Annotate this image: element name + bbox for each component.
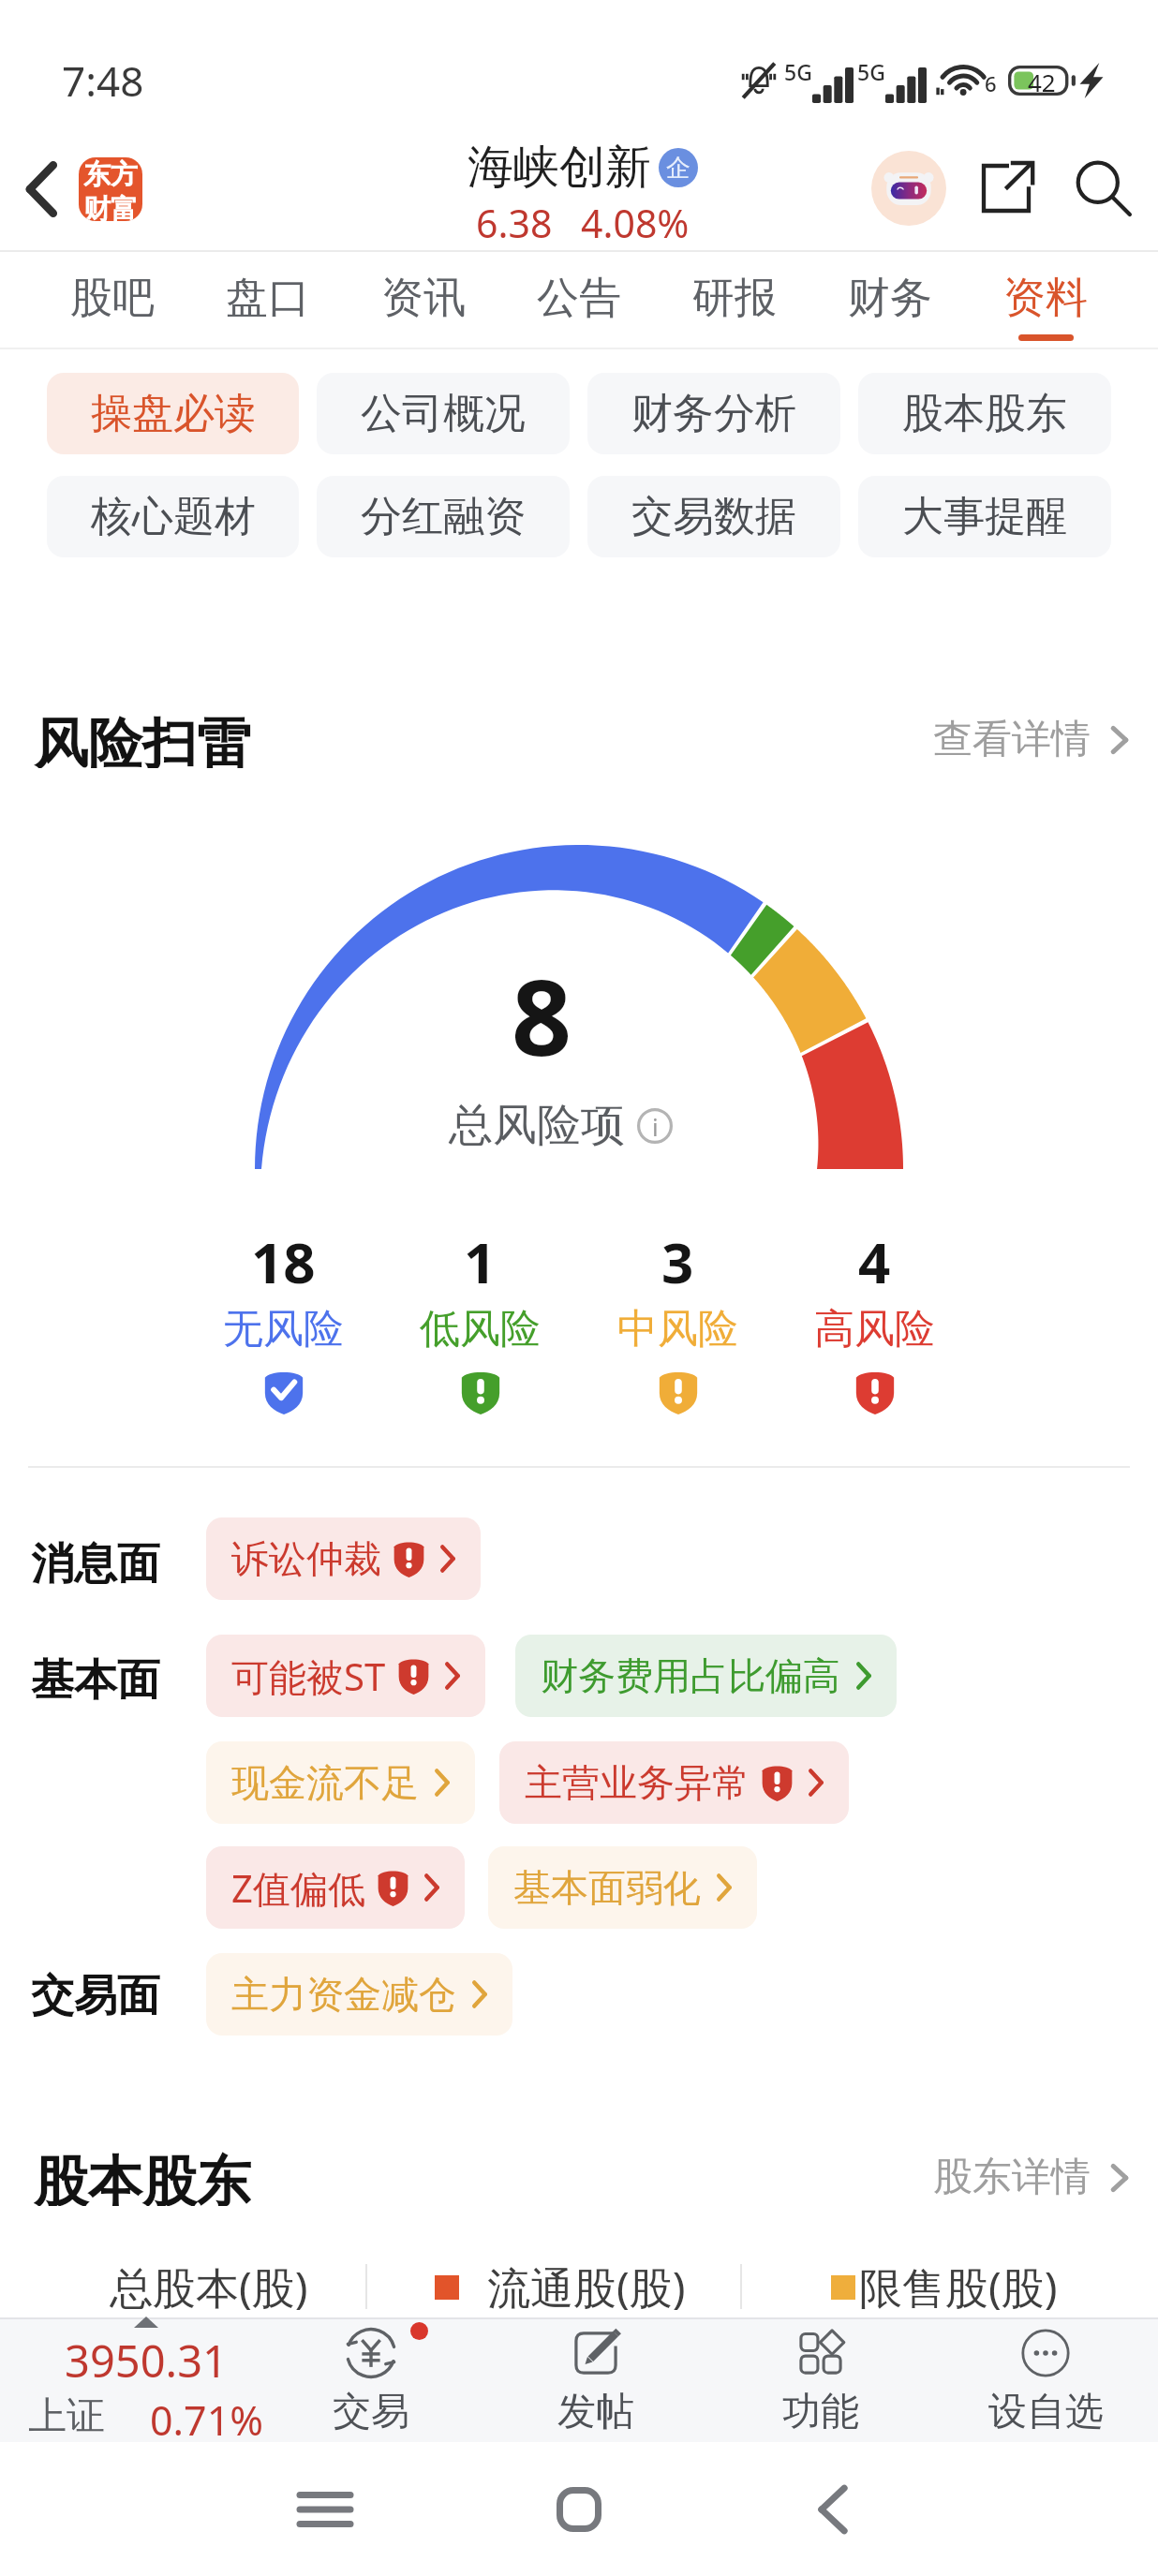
- button[interactable]: Back: [6, 154, 77, 225]
- button[interactable]: 财务分析: [587, 373, 840, 454]
- staticText: 18: [251, 1223, 316, 1300]
- button[interactable]: 股东详情: [933, 2153, 1128, 2202]
- staticText: 研报: [692, 272, 777, 325]
- staticText: 资讯: [381, 272, 466, 325]
- staticText: 基本面: [31, 1653, 160, 1708]
- staticText: 0.71%: [150, 2392, 264, 2441]
- button[interactable]: 主营业务异常: [499, 1741, 849, 1824]
- button[interactable]: 盘口: [190, 252, 346, 348]
- button[interactable]: 查看详情: [933, 715, 1128, 764]
- button[interactable]: 1: [420, 1223, 541, 1414]
- staticText: 设自选: [988, 2388, 1104, 2436]
- staticText: 功能: [782, 2388, 859, 2436]
- staticText: 财务分析: [631, 388, 796, 439]
- staticText: 查看详情: [933, 715, 1091, 764]
- staticText: 现金流不足: [231, 1759, 419, 1806]
- staticText: 盘口: [226, 272, 310, 325]
- staticText: 分红融资: [361, 491, 526, 542]
- button[interactable]: 交易数据: [587, 476, 840, 557]
- button[interactable]: 18: [223, 1223, 344, 1414]
- button[interactable]: 功能: [708, 2317, 933, 2442]
- staticText: 交易数据: [631, 491, 796, 542]
- staticText: 消息面: [31, 1537, 160, 1591]
- staticText: 上证: [28, 2392, 105, 2441]
- staticText: 无风险: [223, 1304, 344, 1355]
- staticText: 企: [666, 153, 690, 184]
- button[interactable]: 基本面弱化: [488, 1846, 757, 1929]
- button[interactable]: 资料: [968, 252, 1123, 348]
- staticText: i: [652, 1110, 659, 1143]
- staticText: 总风险项: [449, 1098, 625, 1153]
- button[interactable]: 资讯: [346, 252, 501, 348]
- staticText: 1: [464, 1223, 497, 1300]
- staticText: Z值偏低: [231, 1862, 365, 1914]
- button[interactable]: 财务费用占比偏高: [515, 1635, 897, 1717]
- staticText: 风险扫雷: [34, 710, 251, 768]
- button[interactable]: 3950.31: [0, 2317, 259, 2442]
- staticText: 海峡创新: [468, 139, 651, 197]
- button[interactable]: 现金流不足: [206, 1741, 475, 1824]
- button[interactable]: 主力资金减仓: [206, 1953, 512, 2036]
- staticText: 股吧: [70, 272, 155, 325]
- staticText: 7:48: [62, 52, 144, 109]
- staticText: 核心题材: [91, 491, 256, 542]
- staticText: 股东详情: [933, 2153, 1091, 2202]
- staticText: 总股本(股): [110, 2258, 308, 2317]
- staticText: 3950.31: [65, 2331, 228, 2391]
- button[interactable]: 分红融资: [317, 476, 570, 557]
- staticText: 42: [1028, 66, 1056, 96]
- button[interactable]: Share: [967, 149, 1046, 228]
- staticText: 5G: [784, 57, 812, 86]
- button[interactable]: 4: [814, 1223, 935, 1414]
- staticText: 财务: [848, 272, 932, 325]
- staticText: 中风险: [617, 1304, 738, 1355]
- staticText: 交易面: [31, 1969, 160, 2023]
- staticText: 东方: [83, 157, 138, 192]
- button[interactable]: East Money: [79, 157, 142, 221]
- button[interactable]: Search: [1064, 149, 1143, 228]
- staticText: 8: [512, 943, 572, 1087]
- button[interactable]: 核心题材: [47, 476, 299, 557]
- staticText: 可能被ST: [231, 1651, 386, 1702]
- button[interactable]: 设自选: [933, 2317, 1158, 2442]
- staticText: 6.38: [476, 197, 553, 249]
- button[interactable]: 研报: [657, 252, 812, 348]
- button[interactable]: Recents: [283, 2467, 367, 2552]
- button[interactable]: 大事提醒: [858, 476, 1111, 557]
- button[interactable]: 可能被ST: [206, 1635, 485, 1717]
- button[interactable]: Home: [537, 2467, 621, 2552]
- staticText: 财富: [83, 192, 138, 221]
- staticText: 操盘必读: [91, 388, 256, 439]
- staticText: 限售股(股): [859, 2258, 1058, 2317]
- staticText: 低风险: [420, 1304, 541, 1355]
- staticText: 5G: [857, 57, 885, 86]
- button[interactable]: Back: [791, 2467, 875, 2552]
- button[interactable]: AI Assistant: [871, 151, 946, 226]
- staticText: 公司概况: [361, 388, 526, 439]
- staticText: 流通股(股): [487, 2258, 686, 2317]
- staticText: 主营业务异常: [525, 1759, 750, 1806]
- staticText: 公告: [537, 272, 621, 325]
- staticText: 3: [661, 1223, 694, 1300]
- button[interactable]: 3: [617, 1223, 738, 1414]
- staticText: 4: [858, 1223, 891, 1300]
- staticText: 财务费用占比偏高: [541, 1652, 840, 1699]
- button[interactable]: 操盘必读: [47, 373, 299, 454]
- button[interactable]: Z值偏低: [206, 1846, 465, 1929]
- button[interactable]: 交易: [259, 2317, 483, 2442]
- button[interactable]: 公司概况: [317, 373, 570, 454]
- staticText: 基本面弱化: [513, 1864, 701, 1911]
- button[interactable]: 发帖: [483, 2317, 708, 2442]
- staticText: 6: [985, 69, 997, 97]
- button[interactable]: 财务: [812, 252, 968, 348]
- button[interactable]: 公告: [501, 252, 657, 348]
- staticText: 大事提醒: [902, 491, 1067, 542]
- button[interactable]: 股吧: [35, 252, 190, 348]
- staticText: 资料: [1003, 272, 1088, 325]
- staticText: 4.08%: [581, 197, 690, 249]
- staticText: 主力资金减仓: [231, 1971, 456, 2018]
- button[interactable]: 股本股东: [858, 373, 1111, 454]
- staticText: 股本股东: [34, 2148, 251, 2206]
- button[interactable]: 诉讼仲裁: [206, 1517, 481, 1600]
- staticText: 股本股东: [902, 388, 1067, 439]
